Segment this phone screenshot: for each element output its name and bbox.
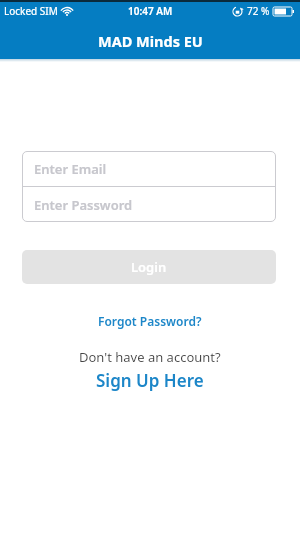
staticText: 72 % (247, 4, 270, 18)
staticText: Login (131, 258, 167, 276)
button[interactable]: Enter Email (22, 151, 276, 186)
button[interactable]: Forgot Password? (98, 313, 202, 329)
staticText: Enter Password (34, 196, 133, 214)
button[interactable]: Login (22, 250, 276, 284)
staticText: Locked SIM (4, 4, 58, 18)
staticText: 10:47 AM (128, 4, 173, 18)
staticText: MAD Minds EU (98, 31, 203, 51)
button[interactable]: Enter Password (22, 187, 276, 222)
staticText: Don't have an account? (79, 348, 221, 366)
staticText: Enter Email (34, 160, 107, 178)
button[interactable]: Sign Up Here (96, 369, 204, 392)
